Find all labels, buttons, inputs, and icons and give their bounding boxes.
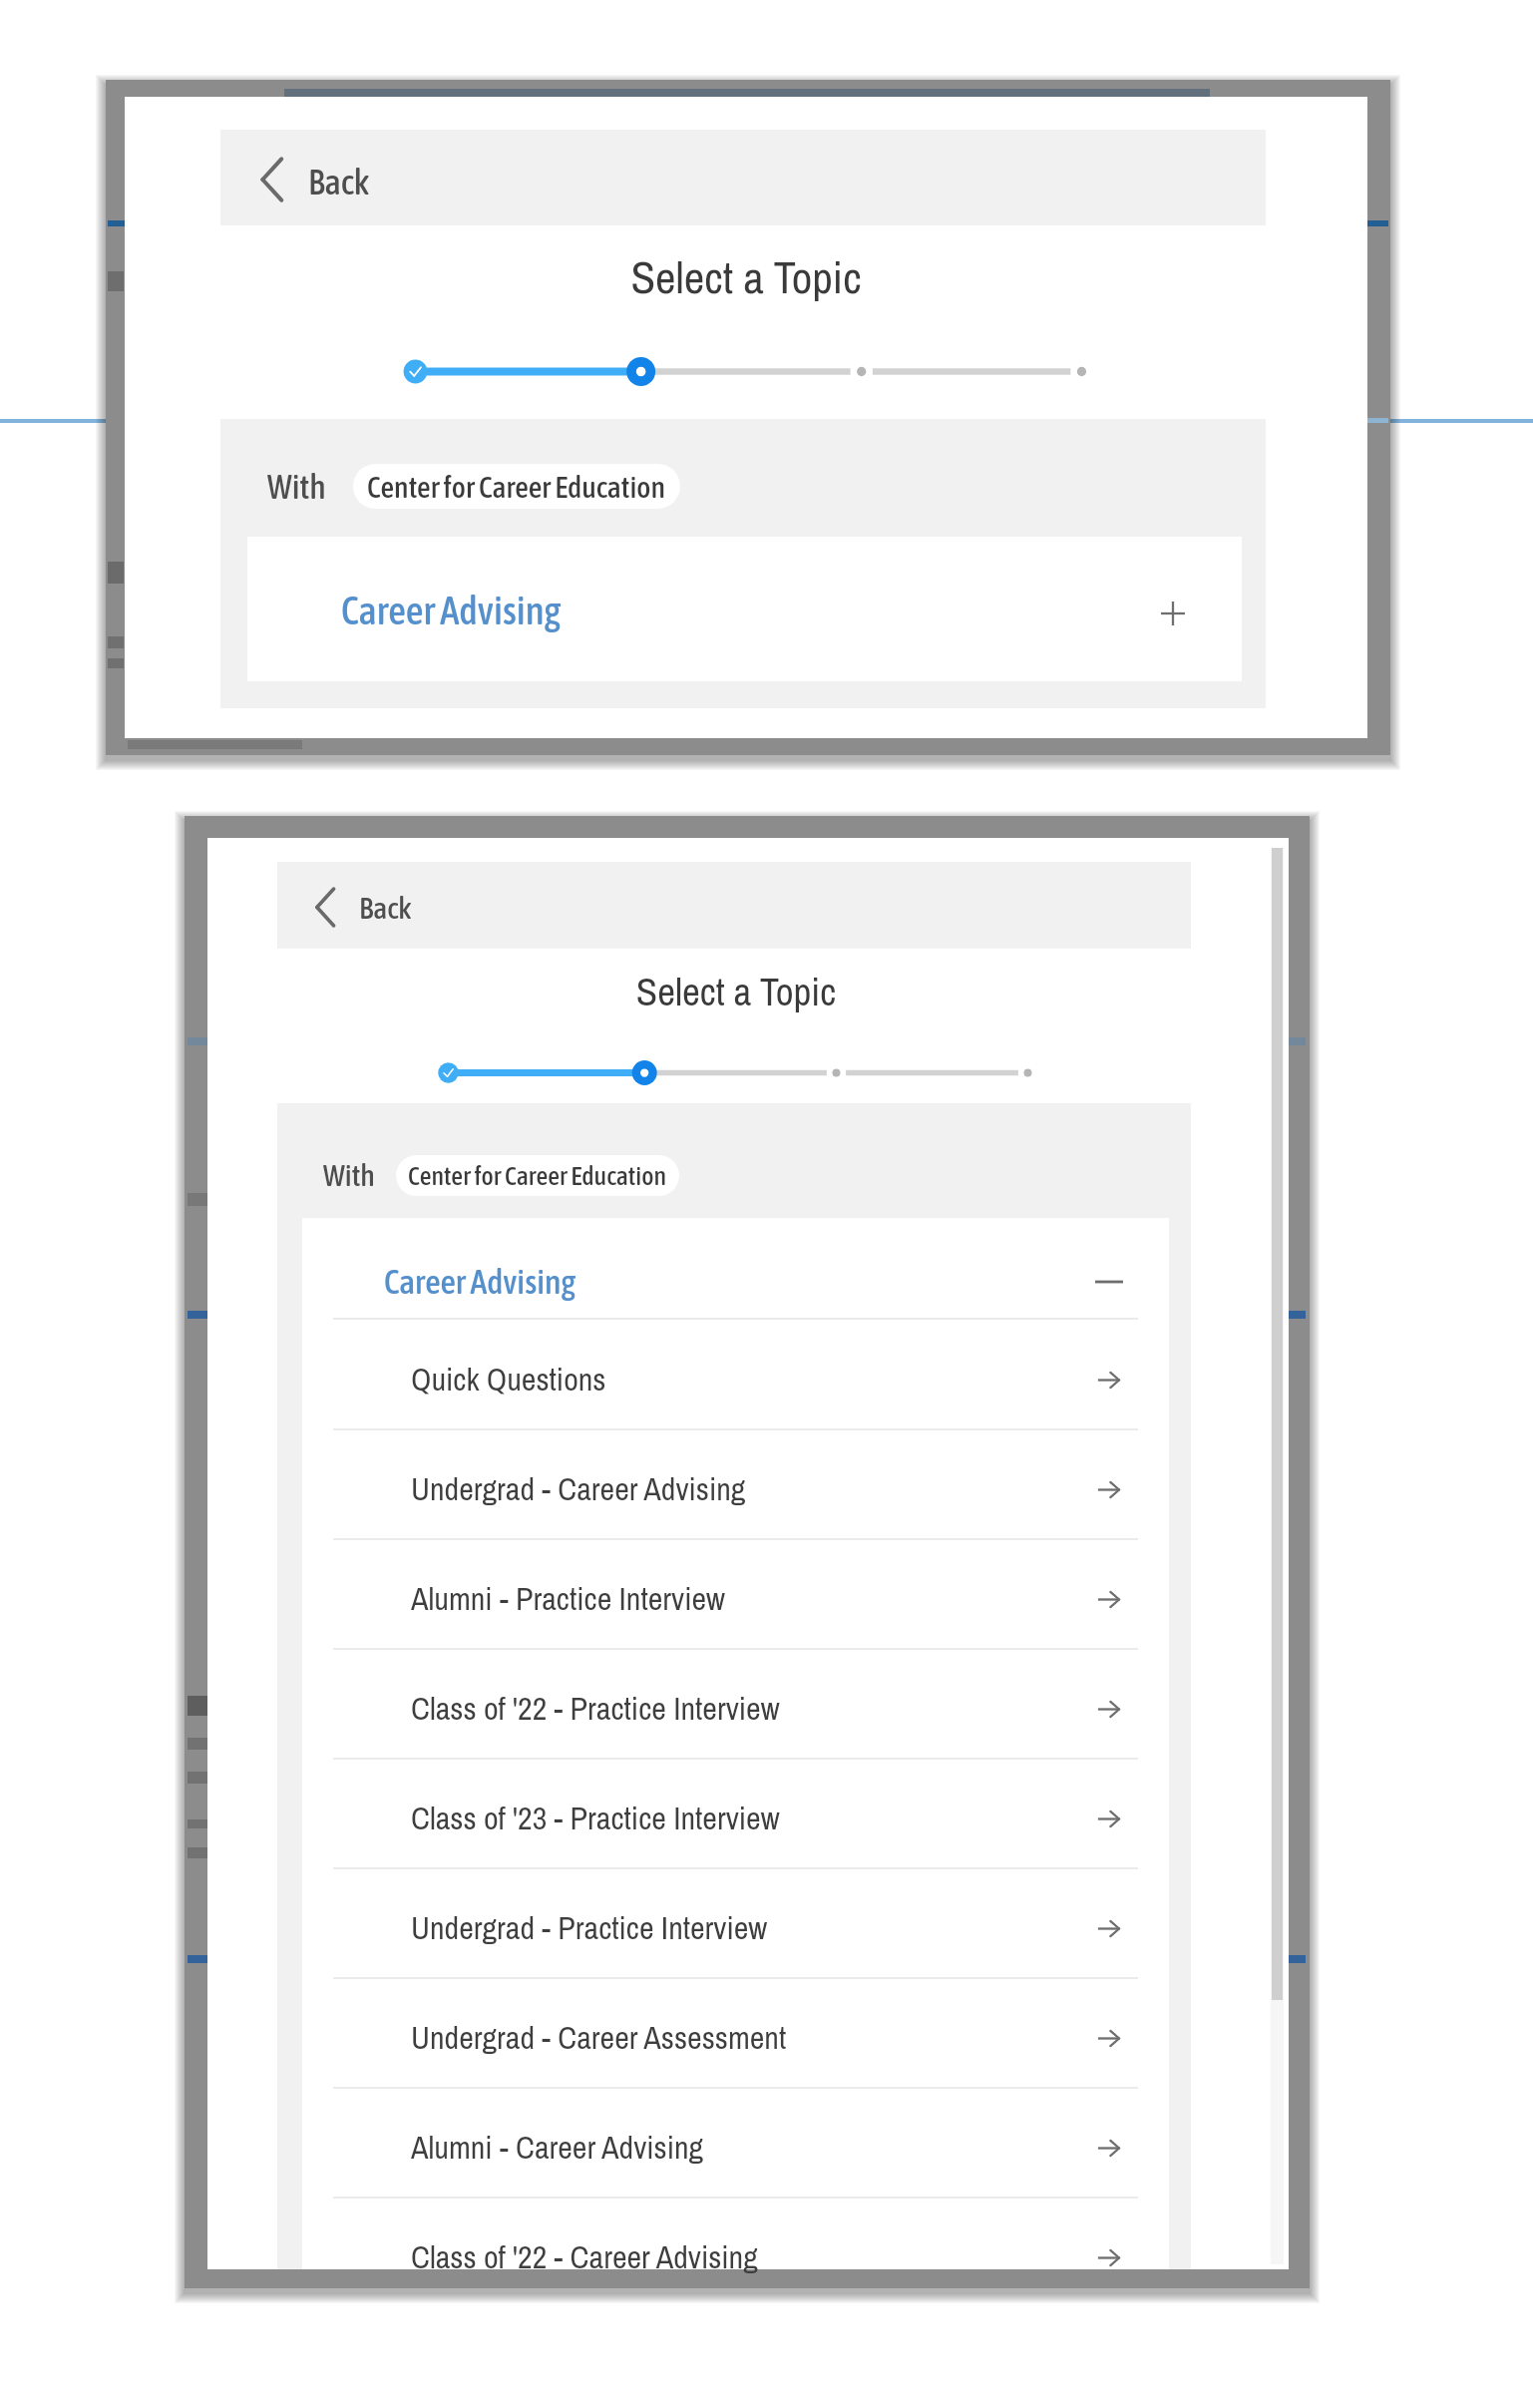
button[interactable]: Class of '23 - Practice Interview bbox=[302, 1759, 1169, 1868]
staticText: Center for Career Education bbox=[408, 1161, 667, 1191]
button[interactable]: Back bbox=[277, 862, 1191, 949]
staticText: With bbox=[323, 1158, 375, 1192]
button[interactable]: Undergrad - Career Assessment bbox=[302, 1978, 1169, 2088]
button[interactable]: Back bbox=[220, 130, 1266, 225]
staticText: Class of '22 - Career Advising bbox=[411, 2235, 758, 2278]
staticText: Alumni - Career Advising bbox=[411, 2126, 704, 2169]
staticText: Back bbox=[359, 891, 412, 925]
button[interactable]: Class of '22 - Career Advising bbox=[302, 2198, 1169, 2307]
staticText: Class of '22 - Practice Interview bbox=[411, 1687, 780, 1730]
staticText: Select a Topic bbox=[297, 246, 1195, 307]
staticText: Class of '23 - Practice Interview bbox=[411, 1797, 780, 1839]
staticText: Back bbox=[308, 162, 370, 201]
button[interactable]: Alumni - Practice Interview bbox=[302, 1539, 1169, 1649]
button[interactable]: Alumni - Career Advising bbox=[302, 2088, 1169, 2198]
button[interactable]: Center for Career Education bbox=[353, 464, 680, 509]
button[interactable]: Center for Career Education bbox=[396, 1155, 679, 1196]
staticText: Quick Questions bbox=[411, 1358, 606, 1401]
staticText: With bbox=[267, 467, 326, 506]
button[interactable]: Career Advising bbox=[247, 537, 1242, 681]
staticText: Center for Career Education bbox=[367, 470, 666, 504]
staticText: Undergrad - Career Advising bbox=[411, 1467, 746, 1510]
button[interactable]: Quick Questions bbox=[302, 1320, 1169, 1429]
staticText: Alumni - Practice Interview bbox=[411, 1577, 726, 1620]
staticText: Select a Topic bbox=[337, 966, 1135, 1018]
button[interactable]: Undergrad - Career Advising bbox=[302, 1429, 1169, 1539]
staticText: Career Advising bbox=[341, 589, 562, 633]
staticText: Career Advising bbox=[384, 1262, 576, 1301]
button[interactable]: Class of '22 - Practice Interview bbox=[302, 1649, 1169, 1759]
button[interactable]: Career Advising bbox=[302, 1218, 1169, 1319]
staticText: Undergrad - Practice Interview bbox=[411, 1906, 768, 1949]
button[interactable]: Undergrad - Practice Interview bbox=[302, 1868, 1169, 1978]
staticText: Undergrad - Career Assessment bbox=[411, 2016, 787, 2059]
